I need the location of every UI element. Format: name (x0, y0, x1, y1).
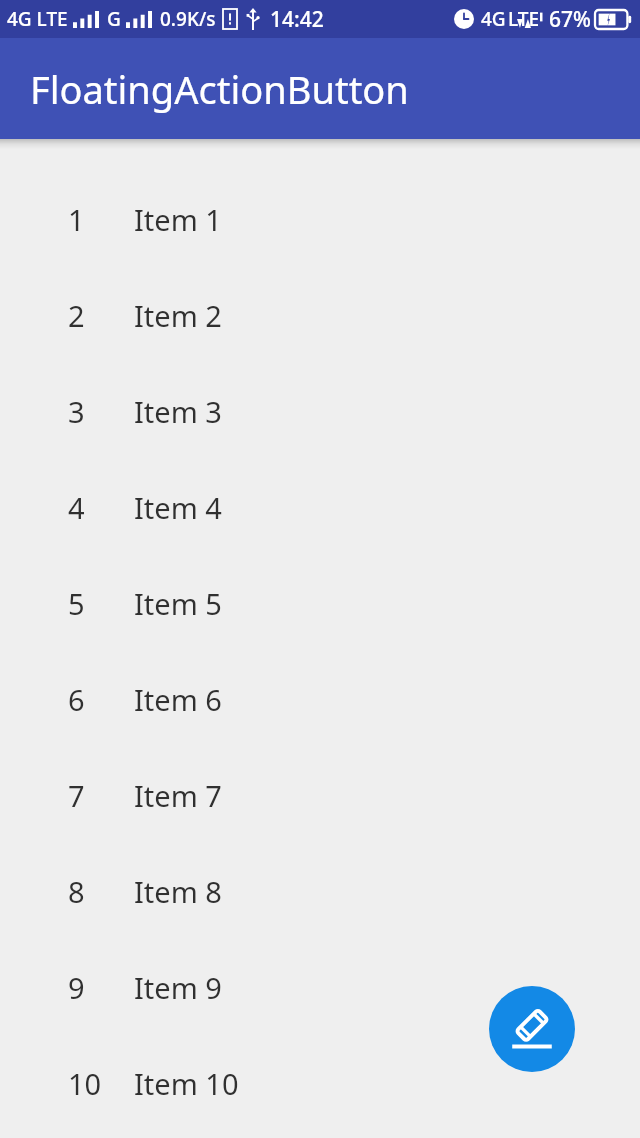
staticText: 0.9K/s (160, 6, 216, 32)
button[interactable]: 10 (0, 1035, 640, 1131)
staticText: 2 (68, 296, 85, 335)
staticText: LTE (508, 6, 540, 32)
staticText: G (107, 6, 121, 32)
button[interactable]: 4 (0, 459, 640, 555)
button[interactable]: 7 (0, 747, 640, 843)
staticText: Item 6 (134, 680, 222, 719)
staticText: 1 (68, 200, 85, 239)
staticText: 9 (68, 968, 85, 1007)
staticText: Item 1 (134, 200, 222, 239)
staticText: Item 7 (134, 776, 222, 815)
staticText: 10 (68, 1064, 102, 1103)
staticText: 3 (68, 392, 85, 431)
staticText: 6 (68, 680, 85, 719)
button[interactable]: 3 (0, 363, 640, 459)
button[interactable]: 8 (0, 843, 640, 939)
staticText: FloatingActionButton (30, 63, 409, 115)
staticText: 4 (68, 488, 85, 527)
staticText: Item 4 (134, 488, 222, 527)
button[interactable]: 6 (0, 651, 640, 747)
staticText: Item 3 (134, 392, 222, 431)
staticText: 14:42 (270, 5, 324, 34)
staticText: Item 5 (134, 584, 222, 623)
staticText: Item 8 (134, 872, 222, 911)
button[interactable]: Edit (489, 986, 575, 1072)
button[interactable]: 9 (0, 939, 640, 1035)
staticText: Item 9 (134, 968, 222, 1007)
staticText: 5 (68, 584, 85, 623)
staticText: 67% (549, 5, 591, 34)
button[interactable]: 5 (0, 555, 640, 651)
staticText: Item 10 (134, 1064, 239, 1103)
staticText: 4G (481, 6, 506, 32)
staticText: Item 2 (134, 296, 222, 335)
button[interactable]: 2 (0, 267, 640, 363)
staticText: 8 (68, 872, 85, 911)
staticText: 4G LTE (7, 6, 68, 32)
staticText: 7 (68, 776, 85, 815)
button[interactable]: 1 (0, 171, 640, 267)
